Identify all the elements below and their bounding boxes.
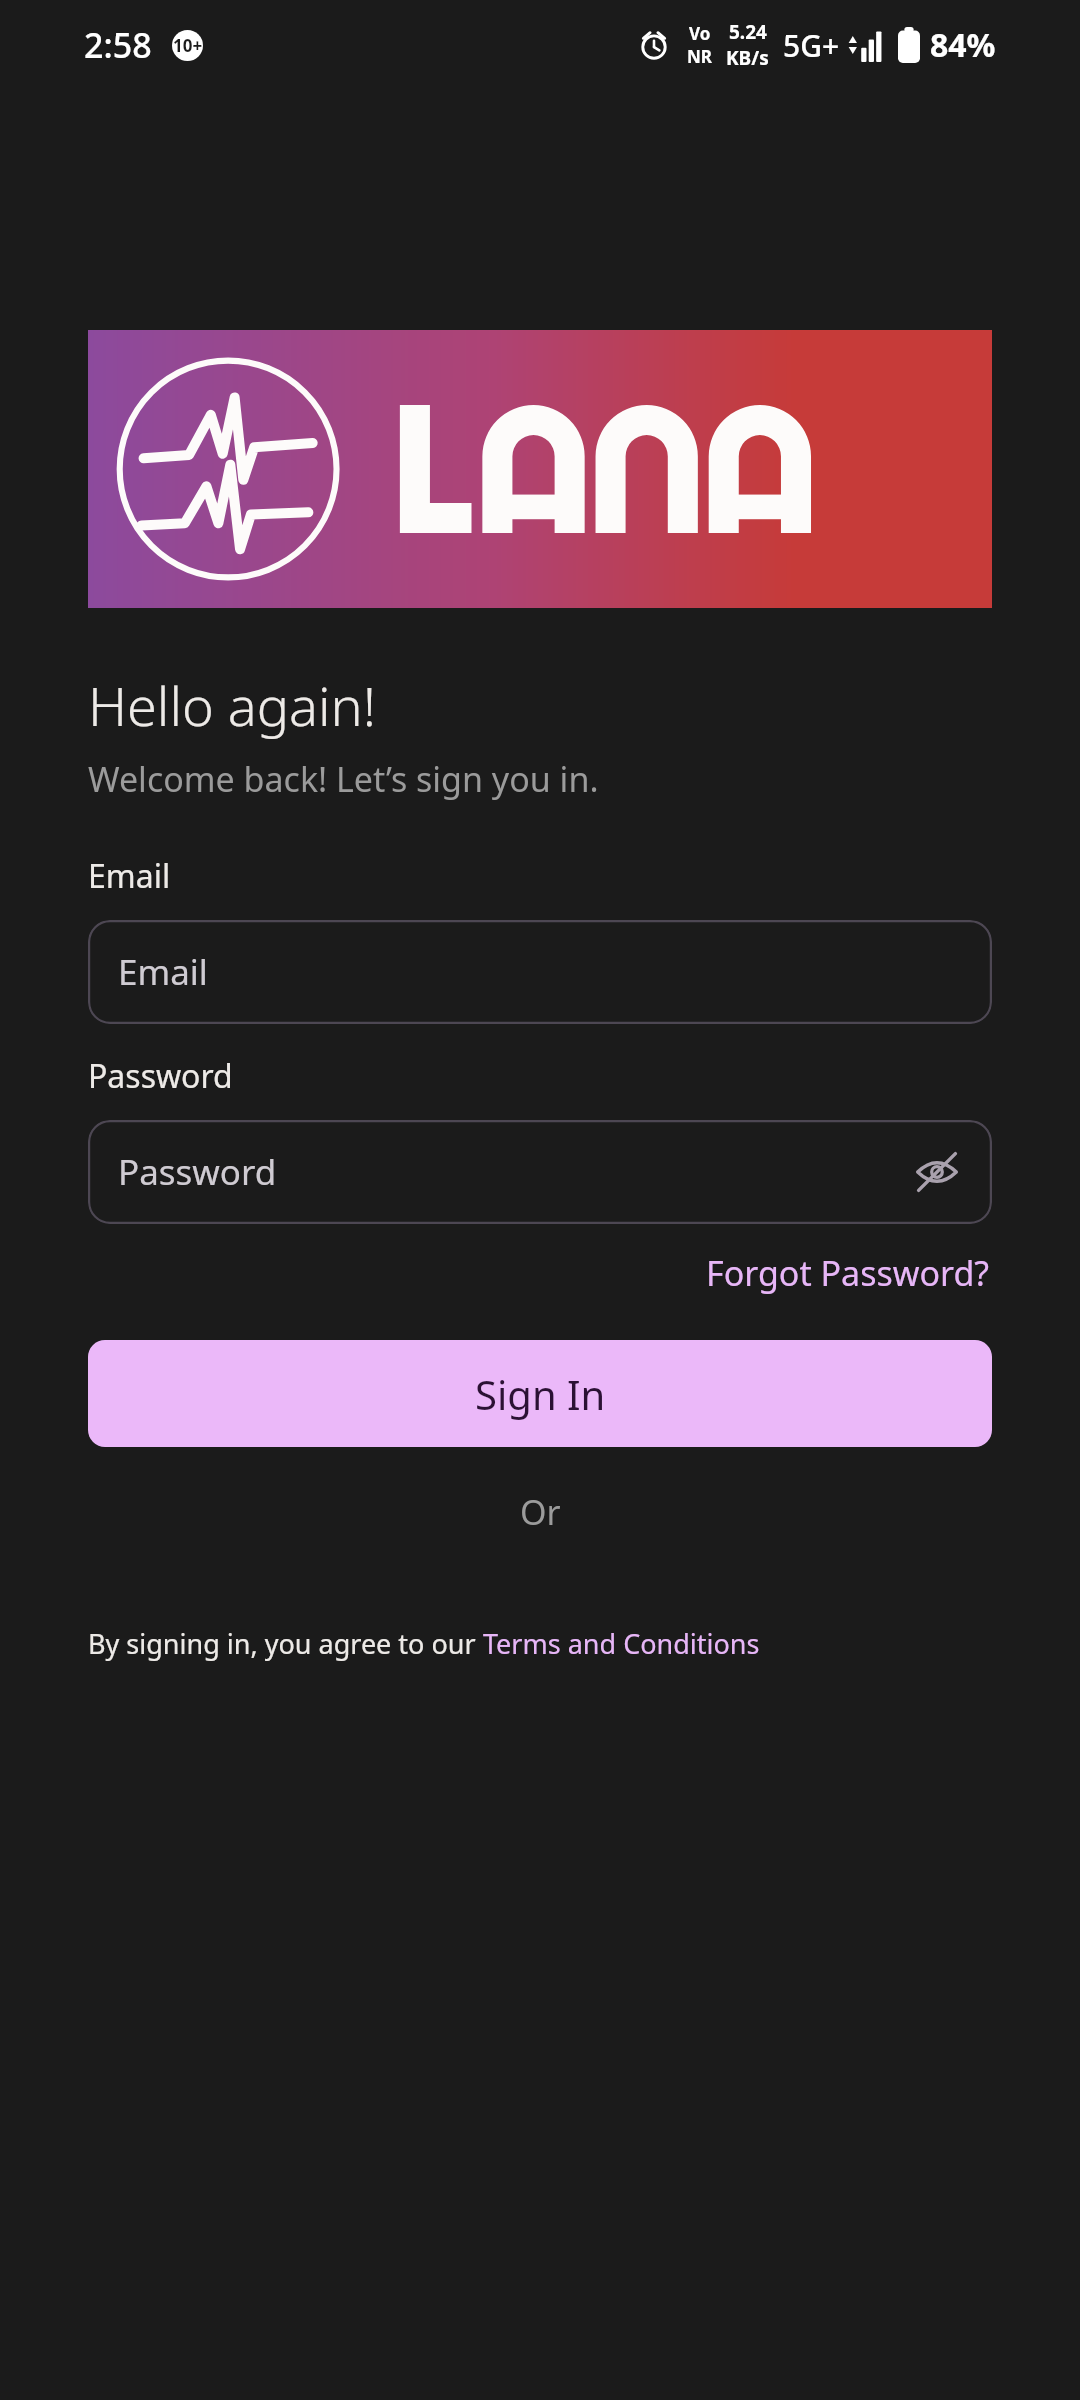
staticText: Sign In [475,1367,606,1421]
staticText: Password [118,1148,277,1196]
staticText: 10+ [173,34,203,57]
button[interactable]: Show password [906,1141,968,1203]
staticText: 2:58 [84,22,152,68]
staticText: Or [520,1489,561,1535]
staticText: NR [687,45,712,68]
staticText: Email [88,854,171,898]
staticText: 5.24 [729,19,767,45]
button[interactable]: Terms and Conditions [483,1625,760,1662]
staticText: Welcome back! Let’s sign you in. [88,756,599,802]
staticText: 84% [930,23,996,67]
staticText: KB/s [726,45,769,71]
staticText: Hello again! [88,668,376,742]
staticText: Password [88,1054,233,1098]
staticText: By signing in, you agree to our [88,1625,483,1662]
button[interactable]: Sign In [88,1340,992,1447]
staticText: Email [118,948,208,996]
button[interactable]: Forgot Password? [704,1246,992,1300]
button[interactable]: Password [88,1120,992,1224]
staticText: Forgot Password? [706,1250,990,1296]
staticText: 5G+ [783,25,840,66]
button[interactable]: Email [88,920,992,1024]
staticText: Vo [689,22,711,45]
staticText: Terms and Conditions [483,1625,760,1662]
